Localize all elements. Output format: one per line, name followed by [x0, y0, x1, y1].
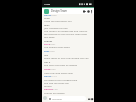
staticText: I filed the bug report 281	[44, 19, 73, 22]
staticText: Thanks	[44, 39, 53, 42]
button[interactable]: Profile	[43, 96, 47, 100]
staticText: Marc	[44, 23, 50, 26]
staticText: Priya	[44, 42, 51, 45]
staticText: Noah	[44, 67, 51, 70]
staticText: 10:40	[49, 50, 55, 53]
button[interactable]: Attach file	[87, 97, 90, 100]
staticText: and push the build to staging	[44, 63, 78, 66]
button[interactable]: Camera	[90, 97, 93, 100]
staticText: when ready to sync the console you can	[44, 56, 89, 59]
staticText: Have the code ready soon	[44, 71, 74, 74]
button[interactable]: Voice call	[86, 9, 90, 13]
button[interactable]: Design Team	[51, 9, 67, 13]
staticText: 10:31	[50, 43, 56, 46]
staticText: and add the notes too	[44, 81, 69, 84]
staticText: Daniela	[44, 87, 54, 90]
staticText: this week	[44, 35, 55, 38]
button[interactable]: More options	[90, 10, 93, 13]
staticText: 10:52	[50, 68, 56, 71]
staticText: Message	[52, 97, 62, 100]
staticText: 11:14	[51, 75, 57, 78]
staticText: Just checked this one	[44, 26, 68, 29]
staticText: 12:06	[44, 2, 51, 5]
staticText: 10:22	[51, 14, 57, 17]
staticText: The ticket is in review now and I will f…	[44, 29, 88, 32]
staticText: thanks	[44, 84, 52, 87]
staticText: run it	[44, 60, 51, 63]
button[interactable]: Olivia	[42, 14, 94, 95]
staticText: The update looks good	[44, 45, 70, 48]
staticText: We need to set a staged build	[44, 78, 78, 81]
staticText: Sam	[44, 49, 50, 52]
staticText: 11:30	[52, 88, 58, 91]
button[interactable]: Message	[48, 96, 86, 101]
staticText: Olivia	[44, 13, 51, 16]
staticText: Hi all	[44, 16, 50, 19]
button[interactable]: Video call	[82, 9, 86, 13]
staticText: Yes	[44, 53, 48, 56]
staticText: Thanks for update	[44, 91, 65, 94]
staticText: the spacing on the card list later today	[44, 32, 87, 35]
staticText: Olivia	[44, 74, 51, 77]
button[interactable]: Group photo	[44, 9, 49, 14]
